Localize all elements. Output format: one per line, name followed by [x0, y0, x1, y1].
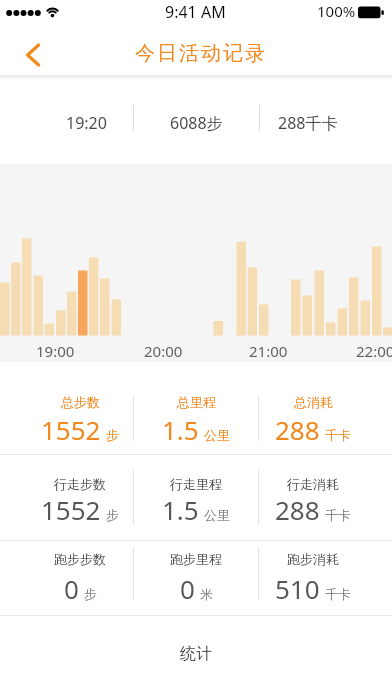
- staticText: 公里: [204, 427, 230, 443]
- staticText: 1552: [41, 412, 101, 447]
- staticText: 0: [180, 571, 195, 606]
- staticText: 今日活动记录: [134, 41, 266, 66]
- staticText: 步: [106, 427, 119, 443]
- staticText: 总消耗: [294, 394, 333, 410]
- staticText: 总步数: [61, 394, 100, 410]
- staticText: 总里程: [177, 394, 216, 410]
- button[interactable]: [14, 38, 54, 72]
- staticText: 公里: [204, 507, 230, 523]
- staticText: 行走步数: [54, 476, 106, 492]
- staticText: 米: [200, 586, 213, 602]
- button[interactable]: 统计: [136, 632, 256, 676]
- staticText: 行走里程: [170, 476, 222, 492]
- staticText: 9:41 AM: [165, 1, 226, 23]
- staticText: 0: [64, 571, 79, 606]
- staticText: 千卡: [325, 586, 351, 602]
- staticText: 510: [275, 571, 320, 606]
- staticText: 跑步里程: [170, 551, 222, 567]
- staticText: 行走消耗: [287, 476, 339, 492]
- staticText: 100%: [317, 1, 356, 21]
- staticText: 统计: [180, 644, 212, 664]
- staticText: 1.5: [162, 412, 199, 447]
- staticText: 千卡: [325, 507, 351, 523]
- staticText: 千卡: [325, 427, 351, 443]
- staticText: 步: [106, 507, 119, 523]
- staticText: 21:00: [249, 341, 288, 361]
- staticText: 19:00: [36, 341, 75, 361]
- staticText: 22:00: [356, 341, 392, 361]
- staticText: 步: [84, 586, 97, 602]
- staticText: 20:00: [144, 341, 183, 361]
- staticText: 19:20: [66, 112, 107, 134]
- staticText: 1552: [41, 492, 101, 527]
- staticText: 跑步步数: [54, 551, 106, 567]
- staticText: 288: [275, 492, 320, 527]
- staticText: 1.5: [162, 492, 199, 527]
- staticText: 288千卡: [278, 112, 338, 134]
- staticText: 跑步消耗: [287, 551, 339, 567]
- staticText: 6088步: [170, 112, 223, 134]
- staticText: 288: [275, 412, 320, 447]
